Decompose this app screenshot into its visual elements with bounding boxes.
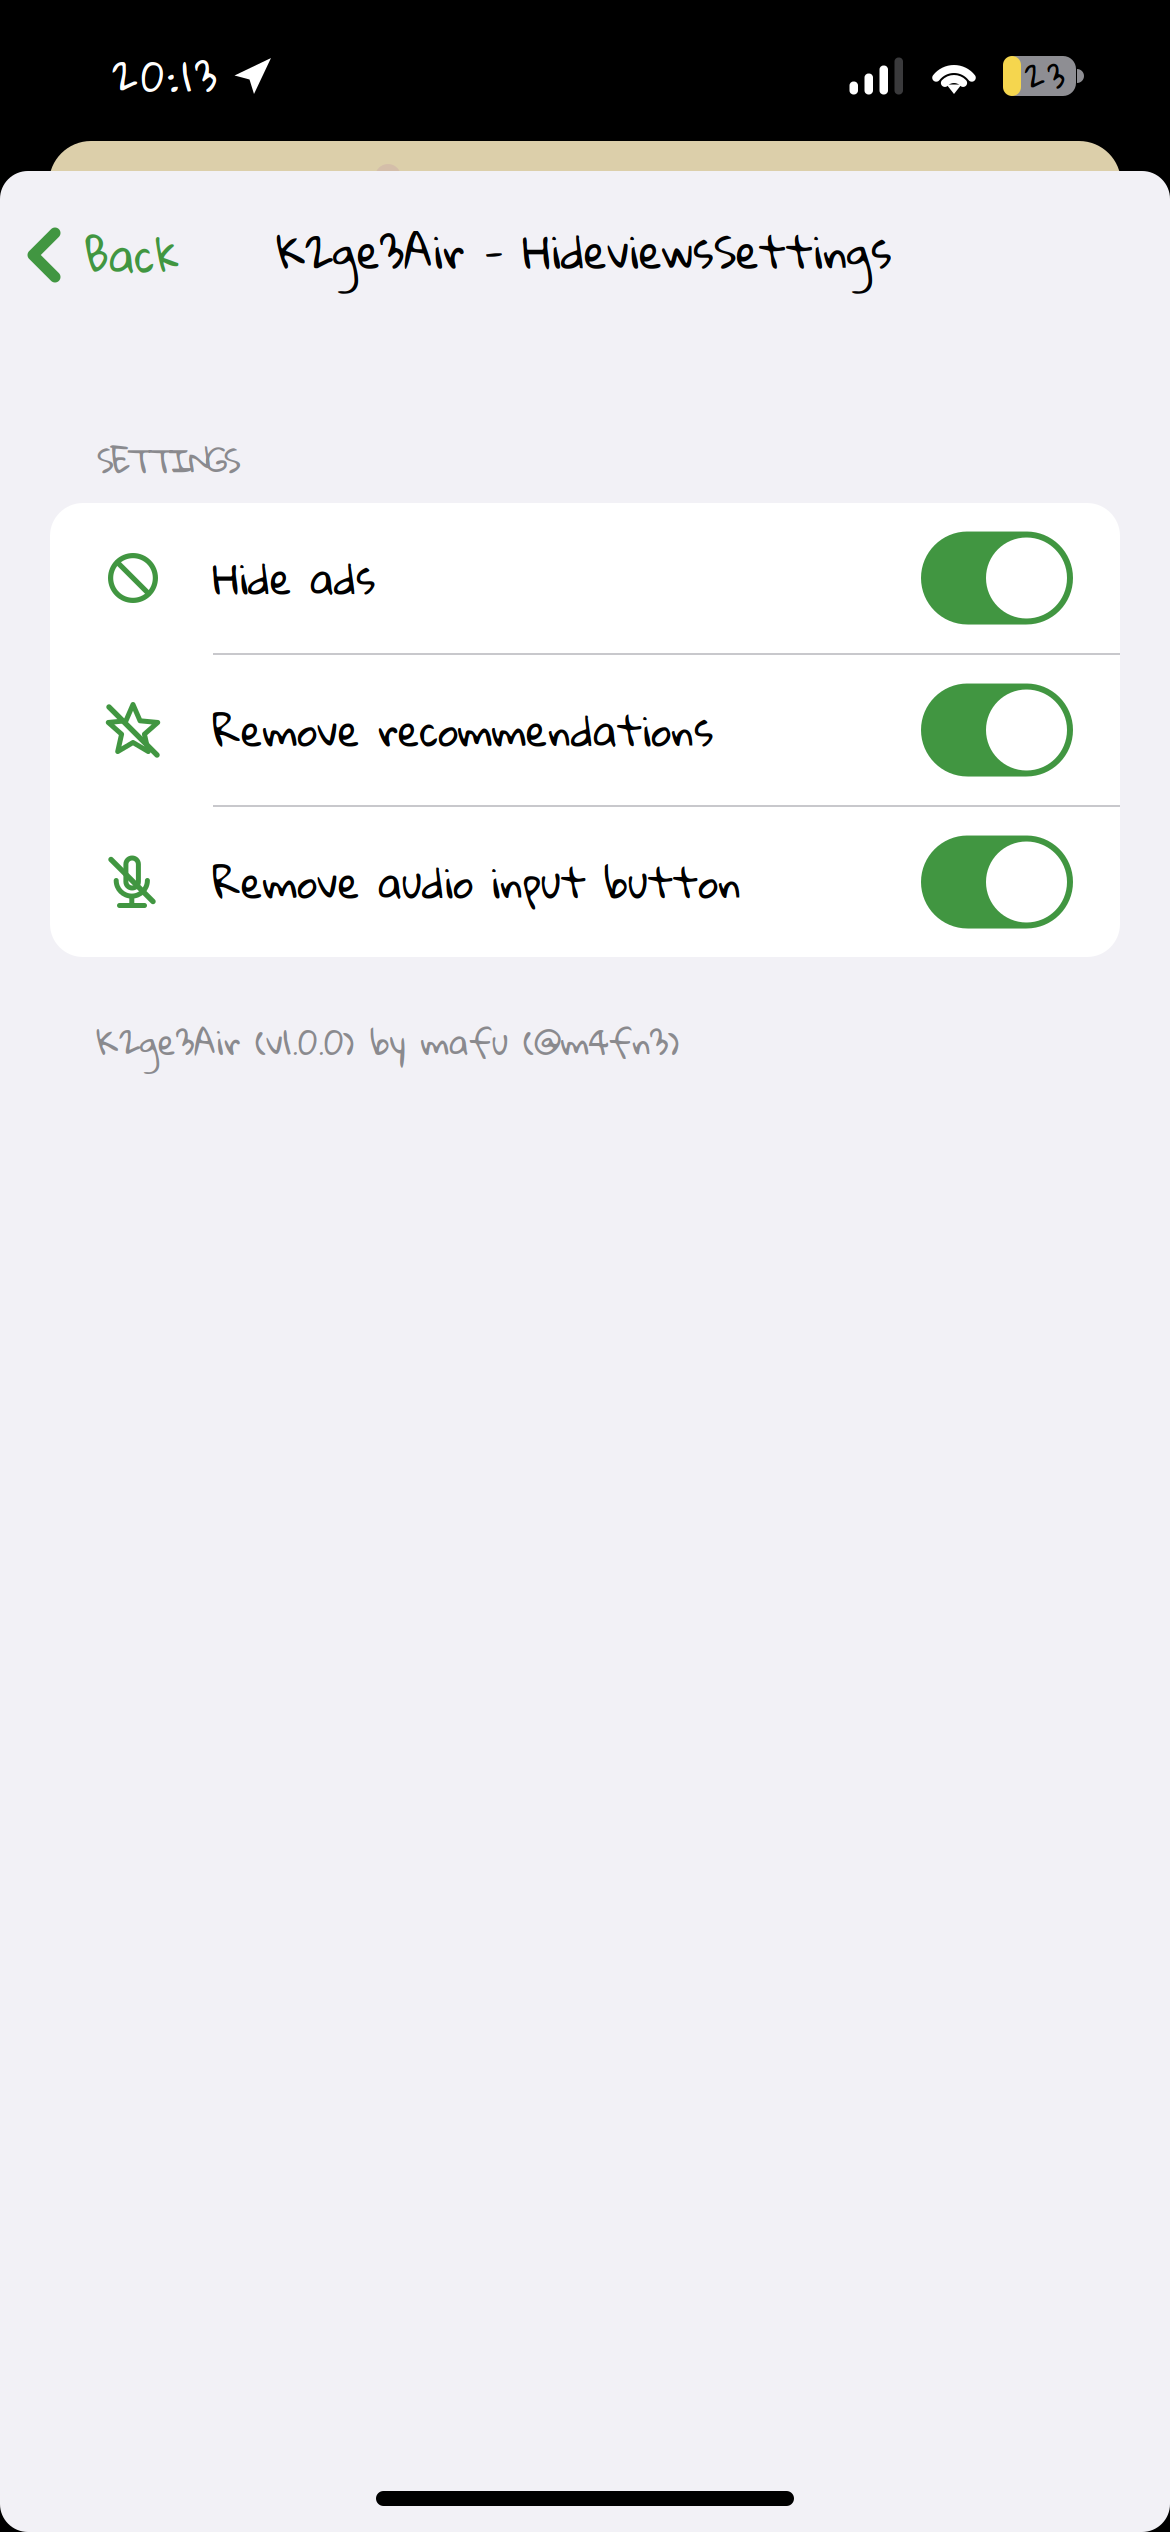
staticText: Remove recommendations bbox=[213, 690, 713, 770]
staticText: Back bbox=[84, 213, 179, 297]
staticText: K2ge3Air - HideviewsSettings bbox=[276, 209, 892, 293]
staticText: SETTINGS bbox=[97, 428, 241, 492]
staticText: Remove audio input button bbox=[213, 842, 741, 922]
button[interactable]: Back bbox=[0, 191, 179, 311]
staticText: Hide ads bbox=[213, 538, 375, 618]
staticText: K2ge3Air (v1.0.0) by mafu (@m4fn3) bbox=[96, 1009, 680, 1074]
button[interactable]: Hide ads bbox=[50, 503, 1120, 653]
button[interactable]: Remove recommendations bbox=[50, 655, 1120, 805]
staticText: 20:13 bbox=[112, 38, 217, 114]
staticText: 23 bbox=[1024, 46, 1064, 106]
button[interactable]: Remove audio input button bbox=[50, 807, 1120, 957]
